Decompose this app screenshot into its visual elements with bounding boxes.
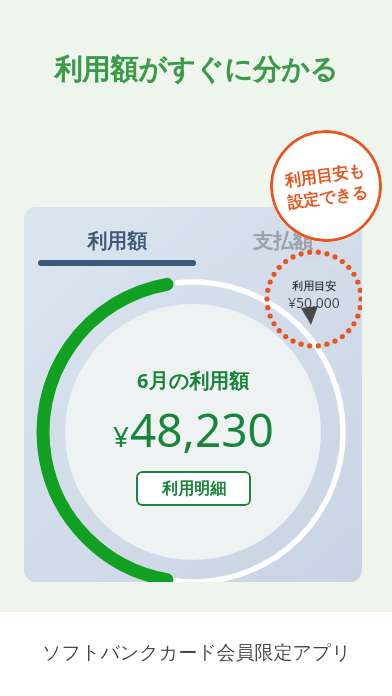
staticText: 利用目安	[292, 279, 336, 293]
staticText: 48,230	[130, 398, 274, 461]
staticText: ソフトバンクカード会員限定アプリ	[42, 641, 351, 665]
button[interactable]: 利用目安も設定できる	[263, 123, 389, 249]
button[interactable]: 利用額	[24, 207, 362, 582]
staticText: 利用明細	[162, 479, 226, 499]
button[interactable]: 支払額	[204, 221, 362, 261]
staticText: 利用額	[87, 229, 147, 254]
staticText: ¥	[113, 417, 130, 455]
staticText: ¥50,000	[288, 293, 340, 312]
button[interactable]: 利用明細	[136, 471, 251, 506]
staticText: 支払額	[253, 229, 313, 254]
button[interactable]: 利用額	[38, 221, 196, 261]
staticText: 利用目安も 設定できる	[283, 160, 369, 212]
staticText: 6月の利用額	[137, 367, 249, 394]
staticText: 利用額がすぐに分かる	[54, 52, 338, 87]
